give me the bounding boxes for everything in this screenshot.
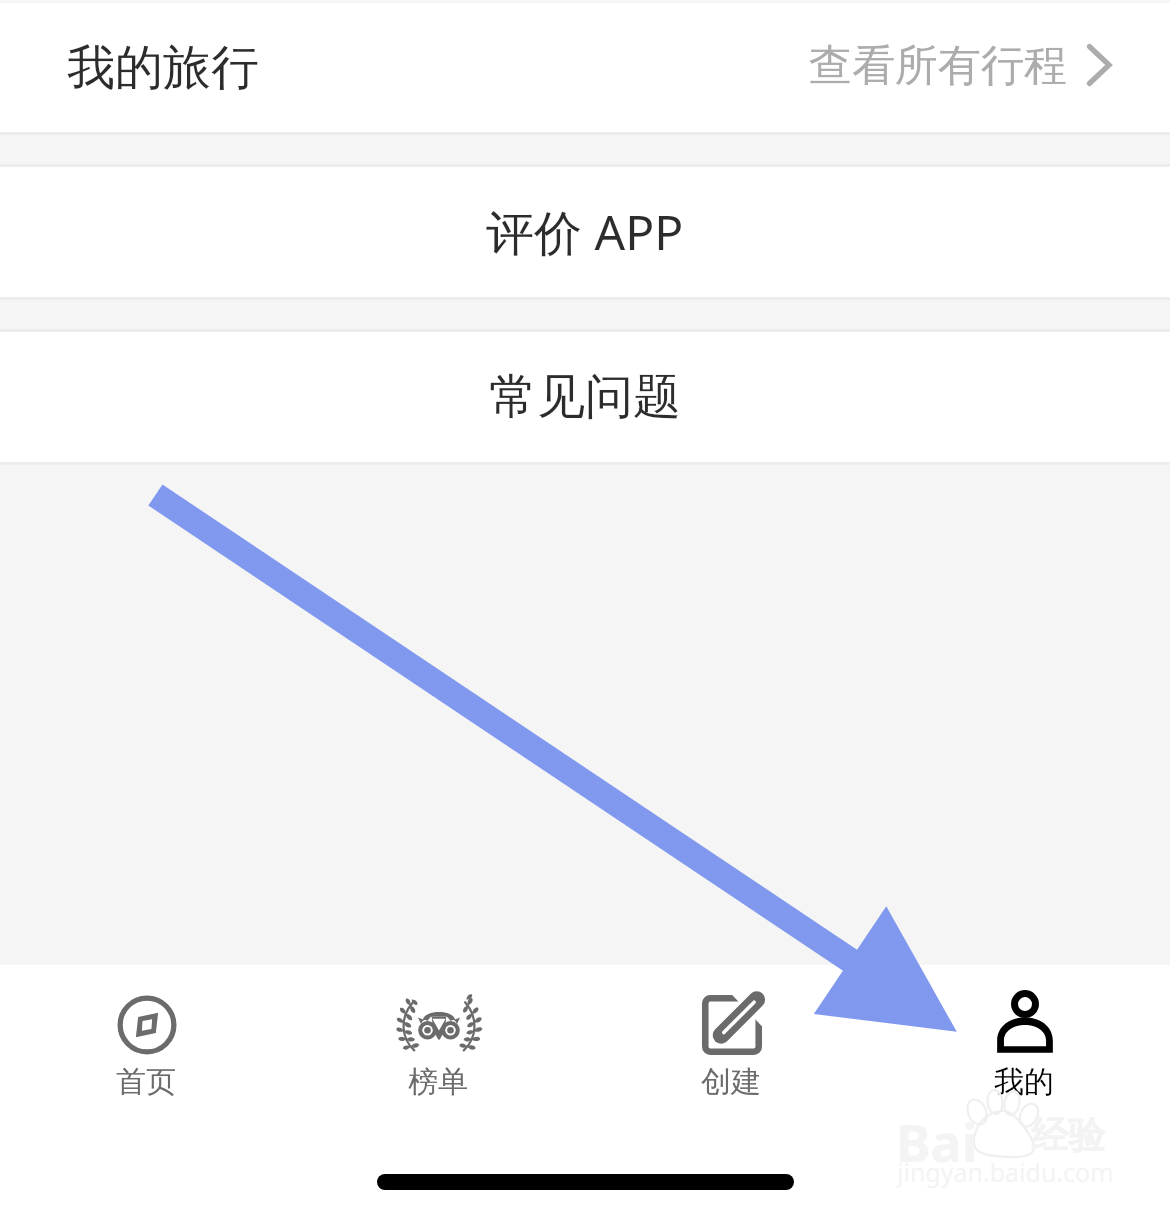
staticText: 我的旅行 <box>67 38 259 98</box>
staticText: 常见问题 <box>489 367 681 427</box>
other: View all trips <box>1087 43 1111 87</box>
staticText: 经验 <box>1031 1112 1105 1159</box>
staticText: 榜单 <box>408 1063 468 1101</box>
button[interactable]: 评价 APP <box>0 167 1170 297</box>
staticText: 首页 <box>116 1063 176 1101</box>
staticText: 评价 APP <box>486 199 684 265</box>
button[interactable]: 创建 <box>584 965 877 1215</box>
button[interactable]: 我的 <box>877 965 1170 1215</box>
staticText: 我的 <box>994 1063 1054 1101</box>
staticText: jingyan.baidu.com <box>897 1155 1114 1189</box>
button[interactable]: 我的旅行 <box>0 3 1170 132</box>
staticText: Bai <box>896 1106 978 1177</box>
staticText: 查看所有行程 <box>809 39 1067 93</box>
button[interactable]: 首页 <box>0 965 292 1215</box>
button[interactable]: 榜单 <box>292 965 584 1215</box>
button[interactable]: 常见问题 <box>0 332 1170 462</box>
staticText: 创建 <box>701 1063 761 1101</box>
